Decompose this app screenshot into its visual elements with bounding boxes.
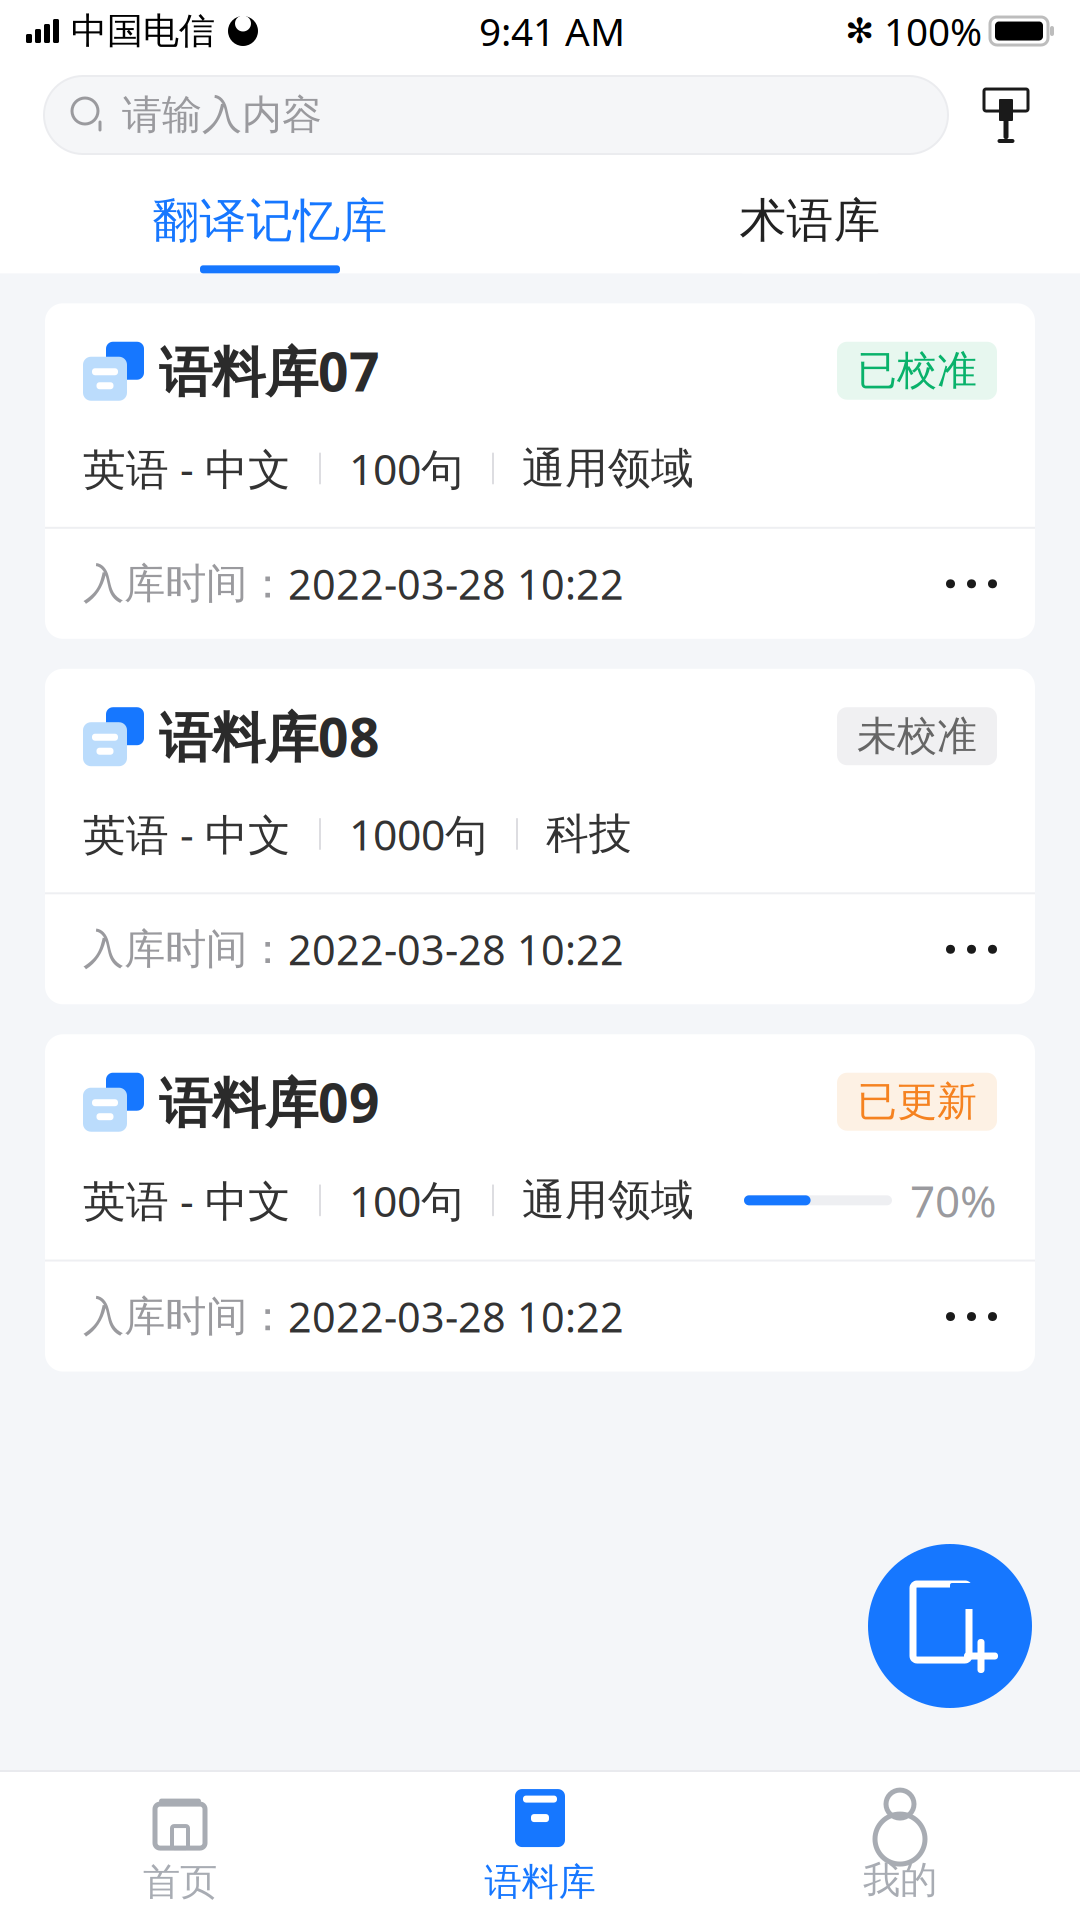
staticText: 科技: [546, 808, 632, 860]
staticText: 1000句: [349, 806, 488, 862]
button[interactable]: 筛选: [948, 76, 1042, 154]
staticText: 70%: [910, 1171, 997, 1229]
staticText: 入库时间：: [83, 1291, 288, 1342]
button[interactable]: 语料库07: [45, 303, 1035, 639]
staticText: 已更新: [857, 1077, 977, 1126]
staticText: 我的: [863, 1857, 937, 1903]
staticText: 中国电信: [71, 9, 215, 53]
staticText: 2022-03-28 10:22: [288, 556, 624, 611]
button[interactable]: 语料库: [360, 1773, 720, 1919]
staticText: 已校准: [857, 346, 977, 395]
button[interactable]: 首页: [0, 1773, 360, 1919]
staticText: 9:41 AM: [479, 5, 625, 57]
staticText: 未校准: [857, 712, 977, 761]
button[interactable]: 请输入内容: [44, 76, 948, 154]
staticText: 通用领域: [522, 442, 694, 495]
staticText: 术语库: [739, 192, 880, 249]
staticText: 语料库07: [159, 335, 380, 406]
staticText: 入库时间：: [83, 924, 288, 975]
staticText: 100%: [884, 5, 982, 57]
button[interactable]: 术语库: [540, 192, 1080, 273]
staticText: 英语 - 中文: [83, 440, 291, 497]
staticText: 通用领域: [522, 1174, 694, 1226]
staticText: 2022-03-28 10:22: [288, 1289, 624, 1344]
button[interactable]: 我的: [720, 1775, 1080, 1917]
staticText: 语料库09: [159, 1066, 380, 1137]
staticText: 2022-03-28 10:22: [288, 922, 624, 977]
staticText: 请输入内容: [122, 90, 322, 139]
staticText: ✻: [845, 11, 874, 51]
staticText: 语料库: [484, 1859, 595, 1905]
button[interactable]: 语料库08: [45, 669, 1035, 1004]
staticText: 100句: [349, 1172, 464, 1229]
staticText: 入库时间：: [83, 558, 288, 609]
staticText: 语料库08: [159, 701, 380, 772]
staticText: 翻译记忆库: [152, 192, 387, 249]
staticText: 100句: [349, 440, 464, 497]
button[interactable]: 语料库09: [45, 1034, 1035, 1372]
staticText: 英语 - 中文: [83, 806, 291, 862]
button[interactable]: 新建语料库: [868, 1544, 1032, 1708]
staticText: 首页: [143, 1859, 217, 1905]
button[interactable]: 翻译记忆库: [0, 192, 540, 273]
staticText: 英语 - 中文: [83, 1172, 291, 1229]
